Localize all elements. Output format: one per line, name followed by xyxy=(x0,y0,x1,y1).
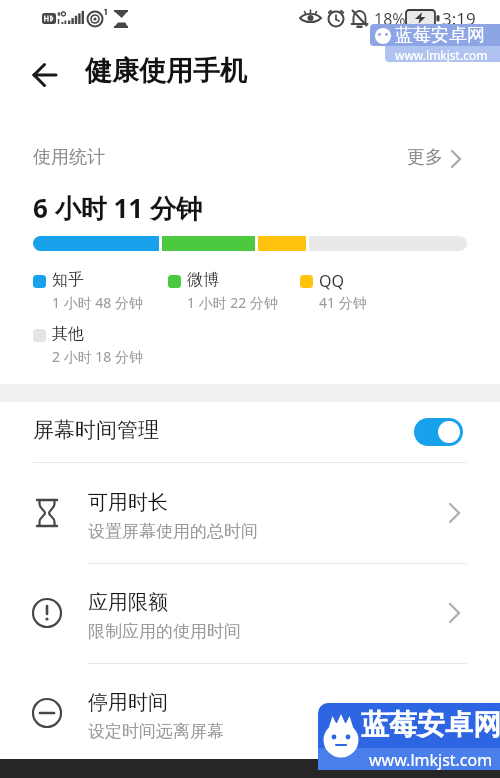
staticText: 1 小时 22 分钟 xyxy=(187,293,278,312)
staticText: www.lmkjst.com xyxy=(369,749,493,770)
button[interactable] xyxy=(414,418,463,446)
staticText: 41 分钟 xyxy=(319,293,367,312)
staticText: 18% xyxy=(374,8,406,30)
staticText: 健康使用手机 xyxy=(85,54,247,88)
staticText: 屏幕时间管理 xyxy=(33,417,159,443)
staticText: 停用时间 xyxy=(88,690,168,715)
staticText: 知乎 xyxy=(52,270,84,290)
staticText: QQ xyxy=(319,270,344,292)
button[interactable] xyxy=(0,50,70,100)
button[interactable]: 屏幕时间管理 xyxy=(0,408,500,460)
staticText: 蓝莓安卓网 xyxy=(395,24,485,46)
staticText: 应用限额 xyxy=(88,590,168,615)
staticText: 6 小时 11 分钟 xyxy=(33,190,202,226)
button[interactable]: 应用限额 xyxy=(0,563,500,663)
button[interactable]: 可用时长 xyxy=(0,463,500,563)
staticText: 2 小时 18 分钟 xyxy=(52,347,143,366)
staticText: 蓝莓安卓网 xyxy=(361,707,500,742)
staticText: 其他 xyxy=(52,324,84,344)
staticText: 可用时长 xyxy=(88,490,168,515)
staticText: 设定时间远离屏幕 xyxy=(88,721,224,742)
staticText: 使用统计 xyxy=(33,146,105,169)
staticText: 3:19 xyxy=(442,7,476,30)
button[interactable]: 使用统计 xyxy=(0,144,500,178)
staticText: www.lmkjst.com xyxy=(395,47,488,62)
staticText: 更多 xyxy=(407,146,443,169)
staticText: 1 小时 48 分钟 xyxy=(52,293,143,312)
staticText: 设置屏幕使用的总时间 xyxy=(88,521,258,542)
button[interactable]: 停用时间 xyxy=(0,663,500,763)
staticText: 微博 xyxy=(187,270,219,290)
staticText: 限制应用的使用时间 xyxy=(88,621,241,642)
